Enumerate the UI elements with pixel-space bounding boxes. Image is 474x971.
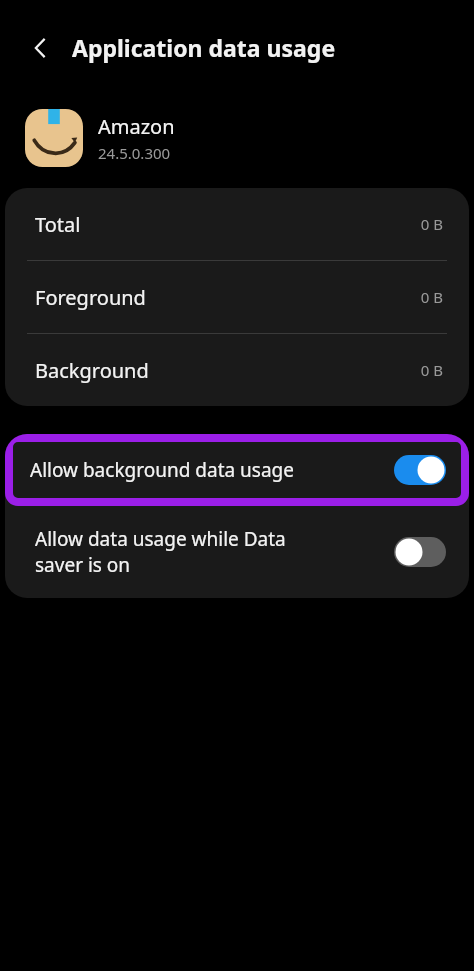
button[interactable]: Toggle off — [394, 537, 446, 567]
button[interactable]: Allow data usage while Data saver is on — [5, 506, 469, 598]
staticText: 0 B — [420, 214, 443, 234]
staticText: 0 B — [420, 360, 443, 380]
button[interactable]: Back — [18, 26, 62, 70]
staticText: Total — [35, 211, 420, 238]
staticText: 0 B — [420, 287, 443, 307]
staticText: Foreground — [35, 284, 420, 311]
button[interactable]: Background — [5, 334, 469, 406]
button[interactable]: Amazon — [0, 95, 474, 180]
staticText: Allow background data usage — [30, 457, 394, 483]
staticText: 24.5.0.300 — [98, 143, 171, 163]
staticText: Allow data usage while Data saver is on — [35, 526, 394, 578]
button[interactable]: Foreground — [5, 261, 469, 333]
staticText: Application data usage — [72, 32, 336, 63]
staticText: Background — [35, 357, 420, 384]
button[interactable]: Toggle on — [394, 455, 446, 485]
button[interactable]: Total — [5, 188, 469, 260]
button[interactable]: Allow background data usage — [5, 434, 469, 506]
staticText: Amazon — [98, 113, 175, 140]
